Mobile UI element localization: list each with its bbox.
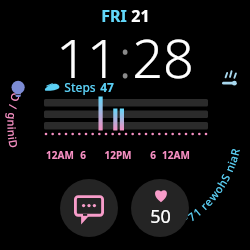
staticText: 28 [132,20,194,94]
button[interactable]: Messages [60,179,118,237]
button[interactable]: FRI [101,5,150,27]
button[interactable]: Heart rate 50 [131,179,189,237]
button[interactable]: Dining / Off light control [0,0,250,250]
staticText: 6 [150,148,156,162]
staticText: FRI [101,5,127,27]
staticText: 50 [150,204,171,229]
staticText: 11 [56,20,118,94]
button[interactable]: Steps [44,79,214,250]
staticText: 12AM [162,148,190,162]
staticText: 6 [80,148,86,162]
staticText: 12PM [104,148,132,162]
staticText: : [118,20,132,94]
staticText: 21 [131,5,150,27]
button[interactable]: Weather Rain Shower 17 degrees [0,0,250,250]
staticText: Steps [64,79,96,95]
button[interactable]: 11 [56,20,194,94]
staticText: 47 [100,79,114,95]
staticText: 12AM [46,148,74,162]
